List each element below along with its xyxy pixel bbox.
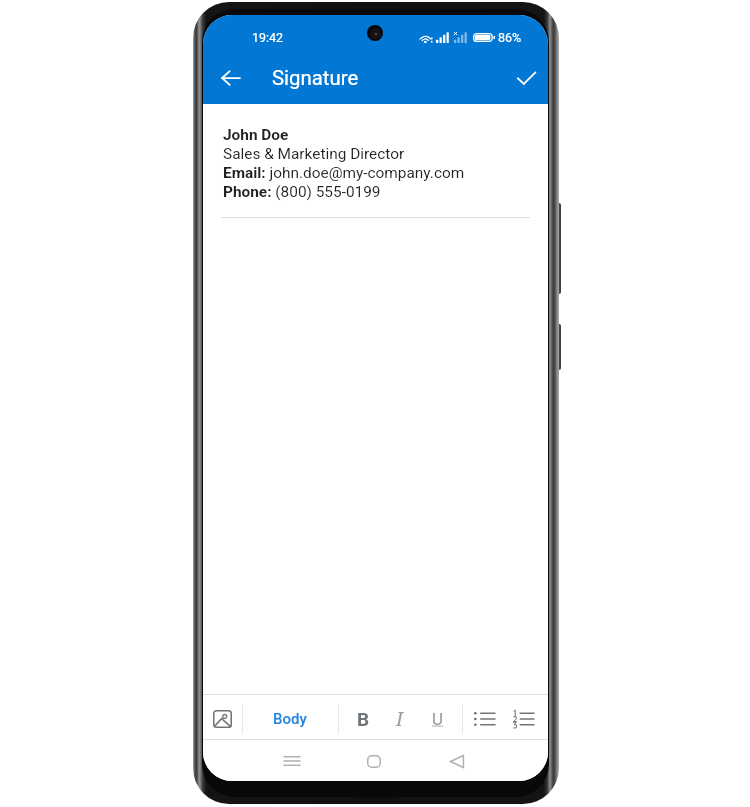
staticText: U — [432, 709, 444, 729]
button[interactable]: Body — [243, 698, 337, 739]
staticText: Body — [273, 710, 307, 728]
button[interactable]: B — [345, 698, 381, 739]
staticText: Signature — [272, 66, 359, 90]
button[interactable]: Insert image — [203, 698, 241, 739]
staticText: John Doe Sales & Marketing Director Emai… — [223, 126, 465, 200]
button[interactable]: U — [420, 698, 456, 739]
staticText: B — [357, 708, 370, 730]
button[interactable]: Navigate up — [212, 60, 248, 96]
staticText: 86% — [498, 30, 522, 45]
staticText: I — [396, 706, 403, 732]
button[interactable]: Back — [439, 743, 475, 779]
button[interactable]: Save signature — [508, 60, 544, 96]
staticText: 19:42 — [252, 30, 284, 45]
button[interactable]: Bulleted list — [466, 698, 504, 739]
button[interactable]: Home — [356, 743, 392, 779]
button[interactable]: Numbered list — [504, 698, 542, 739]
button[interactable]: I — [381, 698, 417, 739]
button[interactable]: Recent apps — [274, 743, 310, 779]
